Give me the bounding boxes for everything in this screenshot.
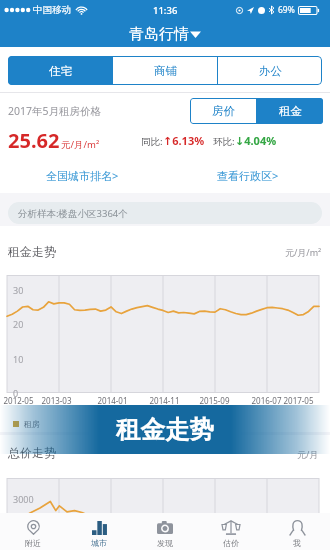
staticText: 元/月/m² [285,246,322,258]
button[interactable]: 附近 [0,513,66,550]
staticText: 25.62 [8,127,60,154]
staticText: ↓4.04% [235,133,277,148]
button[interactable]: 住宅 [8,56,112,85]
staticText: 办公 [259,64,282,78]
staticText: 青岛行情 [129,25,189,44]
staticText: 2017-05 [283,395,314,406]
staticText: 全国城市排名> [46,168,119,183]
button[interactable]: 发现 [132,513,198,550]
staticText: 69% [278,4,295,16]
staticText: 商铺 [154,64,177,78]
staticText: 发现 [157,538,173,548]
button[interactable]: 青岛行情 [0,20,330,47]
staticText: 环比: [213,135,235,148]
staticText: 2014-01 [97,395,128,406]
button[interactable]: 房价 [190,98,256,124]
button[interactable]: 城市 [66,513,132,550]
staticText: 租金走势 [8,244,56,259]
staticText: 估价 [223,538,239,548]
staticText: 20 [13,318,24,330]
button[interactable]: 估价 [198,513,264,550]
other: 估价 [222,520,240,535]
button[interactable]: 租金 [257,98,323,124]
button[interactable]: 办公 [218,56,322,85]
staticText: 同比: [141,135,163,148]
staticText: 2013-03 [41,395,72,406]
staticText: 0 [13,387,19,399]
staticText: 租金走势 [116,414,214,445]
staticText: 2016-07 [251,395,282,406]
button[interactable]: 我 [264,513,330,550]
staticText: 元/月 [297,448,319,460]
staticText: 总价走势 [8,445,56,460]
staticText: 租房 [24,419,40,429]
button[interactable]: 全国城市排名> [0,157,165,193]
staticText: 2014-11 [149,395,180,406]
staticText: 房价 [212,104,235,118]
other: 发现 [157,521,173,534]
staticText: 附近 [25,538,41,548]
staticText: 30 [13,284,24,296]
staticText: 2017年5月租房价格 [8,104,102,118]
staticText: 3000 [13,493,34,505]
staticText: 10 [13,353,24,365]
staticText: 住宅 [49,64,72,78]
button[interactable]: 查看行政区> [165,157,330,193]
staticText: 中国移动 [33,4,71,16]
staticText: 城市 [91,538,107,548]
other: 城市 [92,521,107,535]
staticText: 2015-09 [199,395,230,406]
staticText: 元/月/m² [61,138,100,151]
staticText: 2012-05 [3,395,34,406]
staticText: 我 [293,538,301,548]
staticText: 11:36 [153,4,178,17]
staticText: 分析样本:楼盘小区3364个 [18,207,128,220]
other: 我 [290,520,305,535]
staticText: ↑6.13% [163,133,205,148]
staticText: 查看行政区> [217,168,279,183]
other: 附近 [27,520,40,535]
button[interactable]: 商铺 [113,56,217,85]
staticText: 租金 [279,104,302,118]
